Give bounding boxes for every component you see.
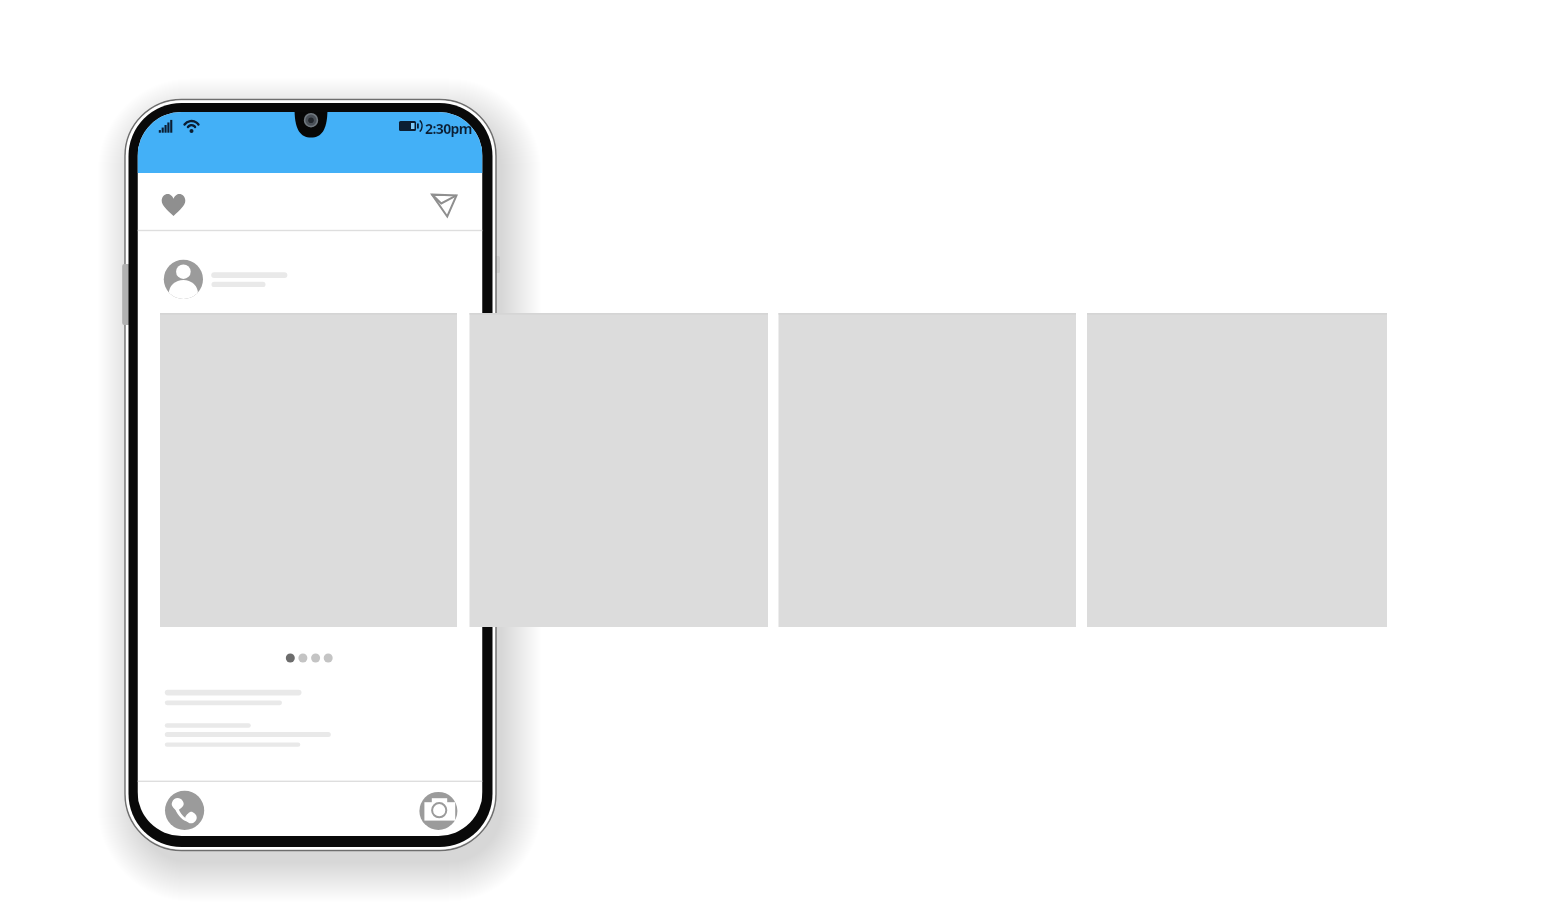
button[interactable]: Call xyxy=(163,789,206,832)
button[interactable]: Camera xyxy=(417,789,460,832)
button[interactable]: Like xyxy=(155,187,192,223)
staticText: 2:30pm xyxy=(425,119,472,138)
button[interactable]: Page 1 of 4 xyxy=(284,650,335,667)
button[interactable]: Send message xyxy=(427,187,463,223)
button[interactable]: Open profile xyxy=(160,257,295,302)
